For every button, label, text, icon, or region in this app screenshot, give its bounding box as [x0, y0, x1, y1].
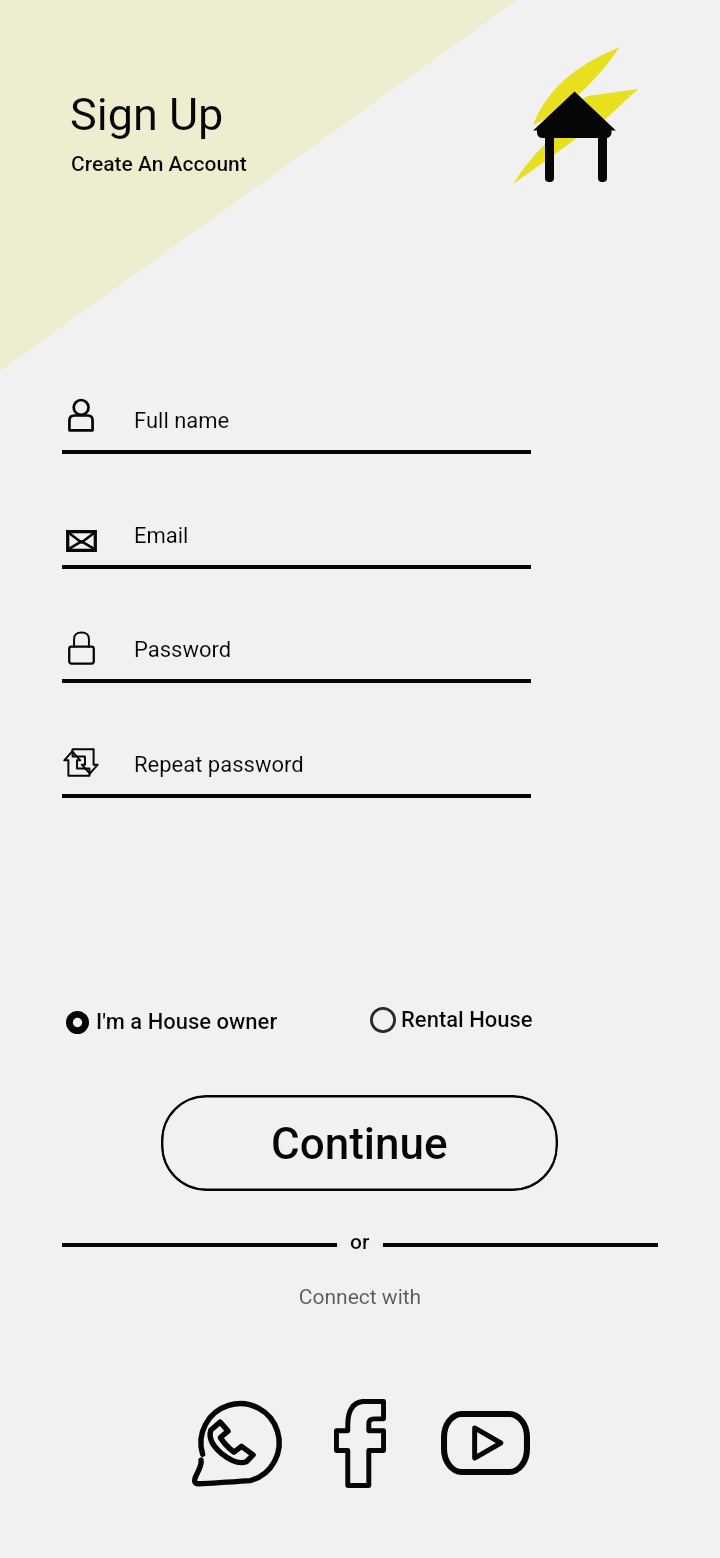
staticText: Sign Up	[70, 88, 224, 141]
staticText: Repeat password	[134, 752, 304, 778]
staticText: Full name	[134, 408, 230, 434]
staticText: or	[350, 1230, 370, 1255]
staticText: Email	[134, 523, 189, 549]
button[interactable]: YouTube	[441, 1411, 530, 1475]
staticText: Connect with	[0, 1285, 720, 1310]
button[interactable]: Rental House	[370, 1007, 533, 1033]
button[interactable]: Password	[62, 619, 531, 683]
staticText: I'm a House owner	[96, 1009, 278, 1035]
button[interactable]: WhatsApp	[191, 1396, 281, 1486]
staticText: Continue	[271, 1118, 448, 1170]
button[interactable]: Repeat password	[62, 734, 531, 798]
staticText: Password	[134, 637, 232, 663]
button[interactable]: I'm a House owner	[66, 1009, 278, 1035]
button[interactable]: Facebook	[334, 1399, 386, 1488]
button[interactable]: Continue	[161, 1095, 558, 1191]
staticText: Rental House	[401, 1007, 533, 1033]
staticText: Create An Account	[71, 152, 247, 177]
button[interactable]: Email	[62, 505, 531, 569]
button[interactable]: Full name	[62, 390, 531, 454]
